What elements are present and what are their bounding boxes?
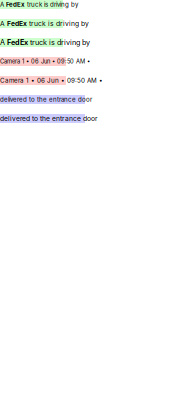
- staticText: delivered to the entrance door: [0, 96, 92, 103]
- staticText: A FedEx truck is driving by: [0, 20, 89, 27]
- staticText: A FedEx truck is driving by: [0, 38, 90, 47]
- staticText: Camera 1 • 06 Jun • 09:50 AM •: [0, 58, 90, 65]
- staticText: delivered to the entrance door: [0, 114, 98, 123]
- staticText: Camera 1 • 06 Jun • 09:50 AM •: [0, 77, 103, 84]
- staticText: A FedEx truck is driving by: [0, 1, 78, 8]
